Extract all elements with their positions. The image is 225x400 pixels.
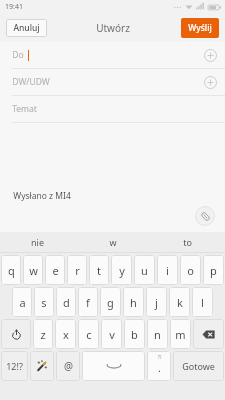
- staticText: c: [86, 327, 92, 342]
- button[interactable]: x: [55, 319, 76, 349]
- staticText: DW/UDW: [12, 76, 50, 88]
- staticText: m: [175, 327, 186, 342]
- button[interactable]: s: [34, 287, 54, 317]
- staticText: a: [19, 295, 26, 310]
- button[interactable]: w: [75, 232, 150, 252]
- staticText: d: [63, 295, 70, 310]
- button[interactable]: 12!?: [1, 351, 28, 381]
- button[interactable]: y: [111, 255, 132, 285]
- button[interactable]: i: [157, 255, 178, 285]
- staticText: b: [131, 327, 138, 342]
- button[interactable]: @: [56, 351, 80, 381]
- button[interactable]: to: [150, 232, 225, 252]
- staticText: n: [154, 327, 161, 342]
- button[interactable]: Space: [82, 351, 145, 381]
- button[interactable]: nie: [0, 232, 75, 252]
- button[interactable]: u: [134, 255, 155, 285]
- button[interactable]: m: [170, 319, 191, 349]
- staticText: Gotowe: [182, 360, 215, 372]
- staticText: Temat: [12, 103, 37, 115]
- staticText: 19:41: [5, 2, 23, 12]
- button[interactable]: n: [147, 319, 168, 349]
- staticText: h: [130, 295, 137, 310]
- button[interactable]: z: [33, 319, 53, 349]
- button[interactable]: Wysłano z MI4: [0, 123, 225, 232]
- button[interactable]: Anuluj: [6, 19, 47, 37]
- staticText: i: [166, 263, 169, 278]
- button[interactable]: ?!: [147, 351, 171, 381]
- button[interactable]: g: [100, 287, 121, 317]
- staticText: x: [63, 327, 69, 342]
- button[interactable]: b: [124, 319, 145, 349]
- button[interactable]: o: [180, 255, 201, 285]
- staticText: z: [40, 327, 46, 342]
- button[interactable]: Temat: [0, 96, 225, 122]
- button[interactable]: Backspace: [193, 319, 224, 349]
- button[interactable]: l: [192, 287, 213, 317]
- staticText: Anuluj: [13, 22, 40, 34]
- staticText: .: [158, 360, 161, 375]
- staticText: Utwórz: [96, 21, 130, 35]
- button[interactable]: e: [45, 255, 65, 285]
- staticText: o: [187, 263, 194, 278]
- button[interactable]: t: [89, 255, 109, 285]
- staticText: l: [201, 295, 204, 310]
- button[interactable]: q: [1, 255, 21, 285]
- staticText: w: [109, 236, 117, 248]
- staticText: u: [141, 263, 148, 278]
- button[interactable]: j: [146, 287, 167, 317]
- staticText: v: [109, 327, 115, 342]
- button[interactable]: Shift: [1, 319, 31, 349]
- staticText: 12!?: [6, 360, 23, 372]
- staticText: k: [177, 295, 183, 310]
- button[interactable]: d: [56, 287, 76, 317]
- staticText: ?!: [157, 353, 162, 361]
- button[interactable]: Gotowe: [173, 351, 224, 381]
- staticText: Wysłano z MI4: [13, 190, 71, 202]
- staticText: q: [8, 263, 15, 278]
- staticText: nie: [31, 236, 44, 248]
- staticText: to: [183, 236, 192, 248]
- button[interactable]: Add recipient: [204, 49, 217, 62]
- button[interactable]: Wyślij: [181, 18, 219, 38]
- button[interactable]: c: [78, 319, 99, 349]
- button[interactable]: DW/UDW: [0, 69, 225, 95]
- button[interactable]: a: [12, 287, 32, 317]
- button[interactable]: Attach file: [195, 206, 215, 226]
- button[interactable]: h: [123, 287, 144, 317]
- button[interactable]: Do: [0, 42, 225, 68]
- button[interactable]: w: [23, 255, 43, 285]
- button[interactable]: k: [169, 287, 190, 317]
- staticText: t: [97, 263, 101, 278]
- button[interactable]: f: [78, 287, 98, 317]
- staticText: Wyślij: [188, 22, 212, 34]
- staticText: j: [155, 295, 158, 310]
- staticText: y: [119, 263, 125, 278]
- button[interactable]: v: [101, 319, 122, 349]
- staticText: e: [52, 263, 59, 278]
- button[interactable]: Input options: [30, 351, 54, 381]
- staticText: p: [210, 263, 217, 278]
- staticText: @: [64, 359, 73, 373]
- staticText: g: [107, 295, 114, 310]
- staticText: Do: [12, 49, 24, 61]
- staticText: f: [86, 295, 90, 310]
- button[interactable]: p: [203, 255, 224, 285]
- button[interactable]: r: [67, 255, 87, 285]
- staticText: s: [41, 295, 47, 310]
- button[interactable]: Add recipient: [204, 76, 217, 89]
- staticText: r: [75, 263, 80, 278]
- staticText: w: [29, 263, 38, 278]
